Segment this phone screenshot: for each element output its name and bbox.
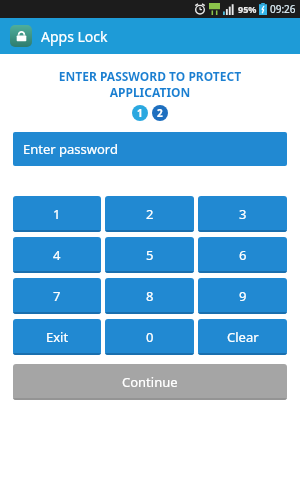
staticText: 8: [146, 287, 154, 305]
button[interactable]: Continue: [13, 364, 287, 400]
staticText: 9: [239, 287, 247, 305]
button[interactable]: 3: [198, 196, 287, 232]
staticText: 3: [239, 205, 247, 223]
staticText: 0: [146, 328, 154, 346]
staticText: Clear: [227, 328, 259, 346]
staticText: 1: [137, 106, 143, 120]
button[interactable]: 1: [13, 196, 101, 232]
staticText: 1: [53, 205, 61, 223]
staticText: Exit: [46, 328, 69, 346]
button[interactable]: 8: [105, 278, 194, 314]
staticText: 2: [157, 106, 163, 120]
staticText: Continue: [122, 373, 178, 391]
button[interactable]: 5: [105, 237, 194, 273]
button[interactable]: Exit: [13, 319, 101, 355]
button[interactable]: 2: [105, 196, 194, 232]
staticText: 5: [146, 246, 154, 264]
button[interactable]: 4: [13, 237, 101, 273]
button[interactable]: 1: [132, 105, 148, 121]
button[interactable]: 9: [198, 278, 287, 314]
staticText: 95%: [238, 3, 257, 15]
staticText: ENTER PASSWORD TO PROTECT APPLICATION: [12, 68, 288, 100]
button[interactable]: 0: [105, 319, 194, 355]
staticText: 7: [53, 287, 61, 305]
button[interactable]: 6: [198, 237, 287, 273]
button[interactable]: 7: [13, 278, 101, 314]
staticText: 2: [146, 205, 154, 223]
staticText: 6: [239, 246, 247, 264]
button[interactable]: Clear: [198, 319, 287, 355]
staticText: 09:26: [270, 2, 296, 16]
staticText: Enter password: [23, 140, 118, 158]
staticText: Apps Lock: [41, 27, 108, 46]
staticText: 4: [53, 246, 61, 264]
button[interactable]: 2: [152, 105, 168, 121]
button[interactable]: Enter password: [13, 132, 287, 166]
